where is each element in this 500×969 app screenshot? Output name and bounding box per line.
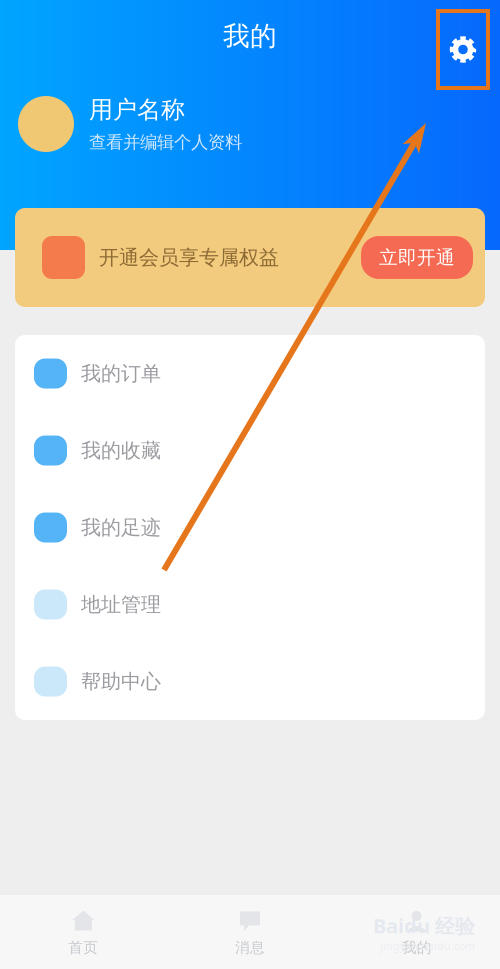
staticText: 我的 <box>402 938 432 956</box>
staticText: 我的足迹 <box>81 515 161 540</box>
staticText: 查看并编辑个人资料 <box>89 132 242 153</box>
staticText: 立即开通 <box>379 246 455 269</box>
button[interactable]: 用户名称 <box>0 88 500 160</box>
staticText: 我的 <box>223 20 277 52</box>
staticText: 我的订单 <box>81 361 161 386</box>
staticText: 帮助中心 <box>81 669 161 694</box>
button[interactable]: 我的收藏 <box>15 412 485 489</box>
staticText: 消息 <box>235 938 265 956</box>
button[interactable]: 帮助中心 <box>15 643 485 720</box>
staticText: 开通会员享专属权益 <box>99 245 279 270</box>
staticText: 用户名称 <box>89 95 185 125</box>
button[interactable]: Settings <box>438 11 488 88</box>
button[interactable]: 地址管理 <box>15 566 485 643</box>
button[interactable]: 消息 <box>167 895 333 969</box>
staticText: 我的收藏 <box>81 438 161 463</box>
button[interactable]: 首页 <box>0 895 167 969</box>
staticText: 首页 <box>68 938 98 956</box>
staticText: 地址管理 <box>81 592 161 617</box>
button[interactable]: 我的 <box>333 895 500 969</box>
button[interactable]: 我的订单 <box>15 335 485 412</box>
button[interactable]: 我的足迹 <box>15 489 485 566</box>
staticText: Baidu 经验 <box>373 912 475 939</box>
staticText: jingyan.baidu.com <box>380 939 475 953</box>
button[interactable]: 开通会员享专属权益 <box>15 208 485 307</box>
